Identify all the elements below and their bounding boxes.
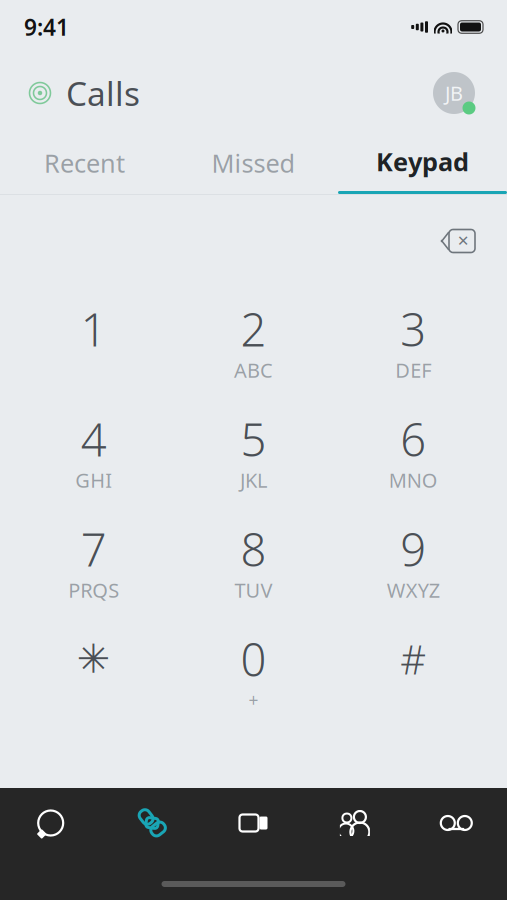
staticText: 3 — [400, 299, 426, 359]
staticText: 5 — [240, 409, 266, 469]
button[interactable]: Keypad — [338, 132, 507, 194]
button[interactable]: Profile — [429, 68, 479, 118]
button[interactable]: Calls — [28, 65, 140, 121]
staticText: 0 — [240, 629, 266, 689]
staticText: JKL — [240, 467, 267, 493]
button[interactable]: Chats — [0, 794, 101, 852]
button[interactable]: 8 — [174, 507, 333, 611]
staticText: 6 — [400, 409, 426, 469]
staticText: 4 — [81, 409, 107, 469]
button[interactable]: Delete — [429, 220, 487, 262]
staticText: DEF — [395, 357, 431, 383]
button[interactable]: 9 — [333, 507, 493, 611]
button[interactable]: 7 — [14, 507, 174, 611]
staticText: JB — [445, 80, 463, 106]
staticText: WXYZ — [387, 577, 440, 603]
staticText: 2 — [240, 299, 266, 359]
staticText: 9:41 — [24, 12, 69, 42]
staticText: 9 — [400, 519, 426, 579]
button[interactable]: Recent — [0, 132, 169, 194]
button[interactable]: Contacts — [304, 794, 406, 852]
button[interactable]: Missed — [169, 132, 338, 194]
staticText: Recent — [44, 146, 125, 180]
button[interactable]: Voicemail — [406, 794, 507, 852]
staticText: ✳ — [77, 636, 111, 682]
staticText: TUV — [234, 577, 272, 603]
staticText: ABC — [234, 357, 273, 383]
button[interactable]: 3 — [333, 287, 493, 391]
button[interactable]: # — [333, 617, 493, 721]
staticText: Missed — [211, 146, 295, 180]
staticText: GHI — [75, 467, 112, 493]
button[interactable]: ✳ — [14, 617, 174, 721]
staticText: 7 — [81, 519, 107, 579]
button[interactable]: 5 — [174, 397, 333, 501]
button[interactable]: 2 — [174, 287, 333, 391]
staticText: MNO — [389, 467, 438, 493]
staticText: PRQS — [68, 577, 119, 603]
staticText: Keypad — [376, 145, 469, 178]
button[interactable]: 1 — [14, 287, 174, 391]
button[interactable]: Calls — [101, 794, 203, 852]
staticText: 1 — [81, 299, 107, 359]
staticText: Calls — [66, 71, 140, 115]
button[interactable]: 6 — [333, 397, 493, 501]
staticText: # — [400, 632, 426, 685]
staticText: 8 — [240, 519, 266, 579]
staticText: ✕ — [457, 233, 469, 249]
button[interactable]: 0 — [174, 617, 333, 721]
button[interactable]: Video — [203, 794, 304, 852]
button[interactable]: 4 — [14, 397, 174, 501]
staticText: + — [248, 689, 258, 712]
